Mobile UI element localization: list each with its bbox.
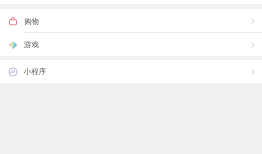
button[interactable]: 游戏: [0, 33, 262, 56]
button[interactable]: 小程序: [0, 60, 262, 83]
button[interactable]: 购物: [0, 9, 262, 33]
staticText: 小程序: [24, 67, 47, 76]
staticText: 购物: [24, 17, 39, 26]
staticText: 游戏: [24, 40, 39, 49]
